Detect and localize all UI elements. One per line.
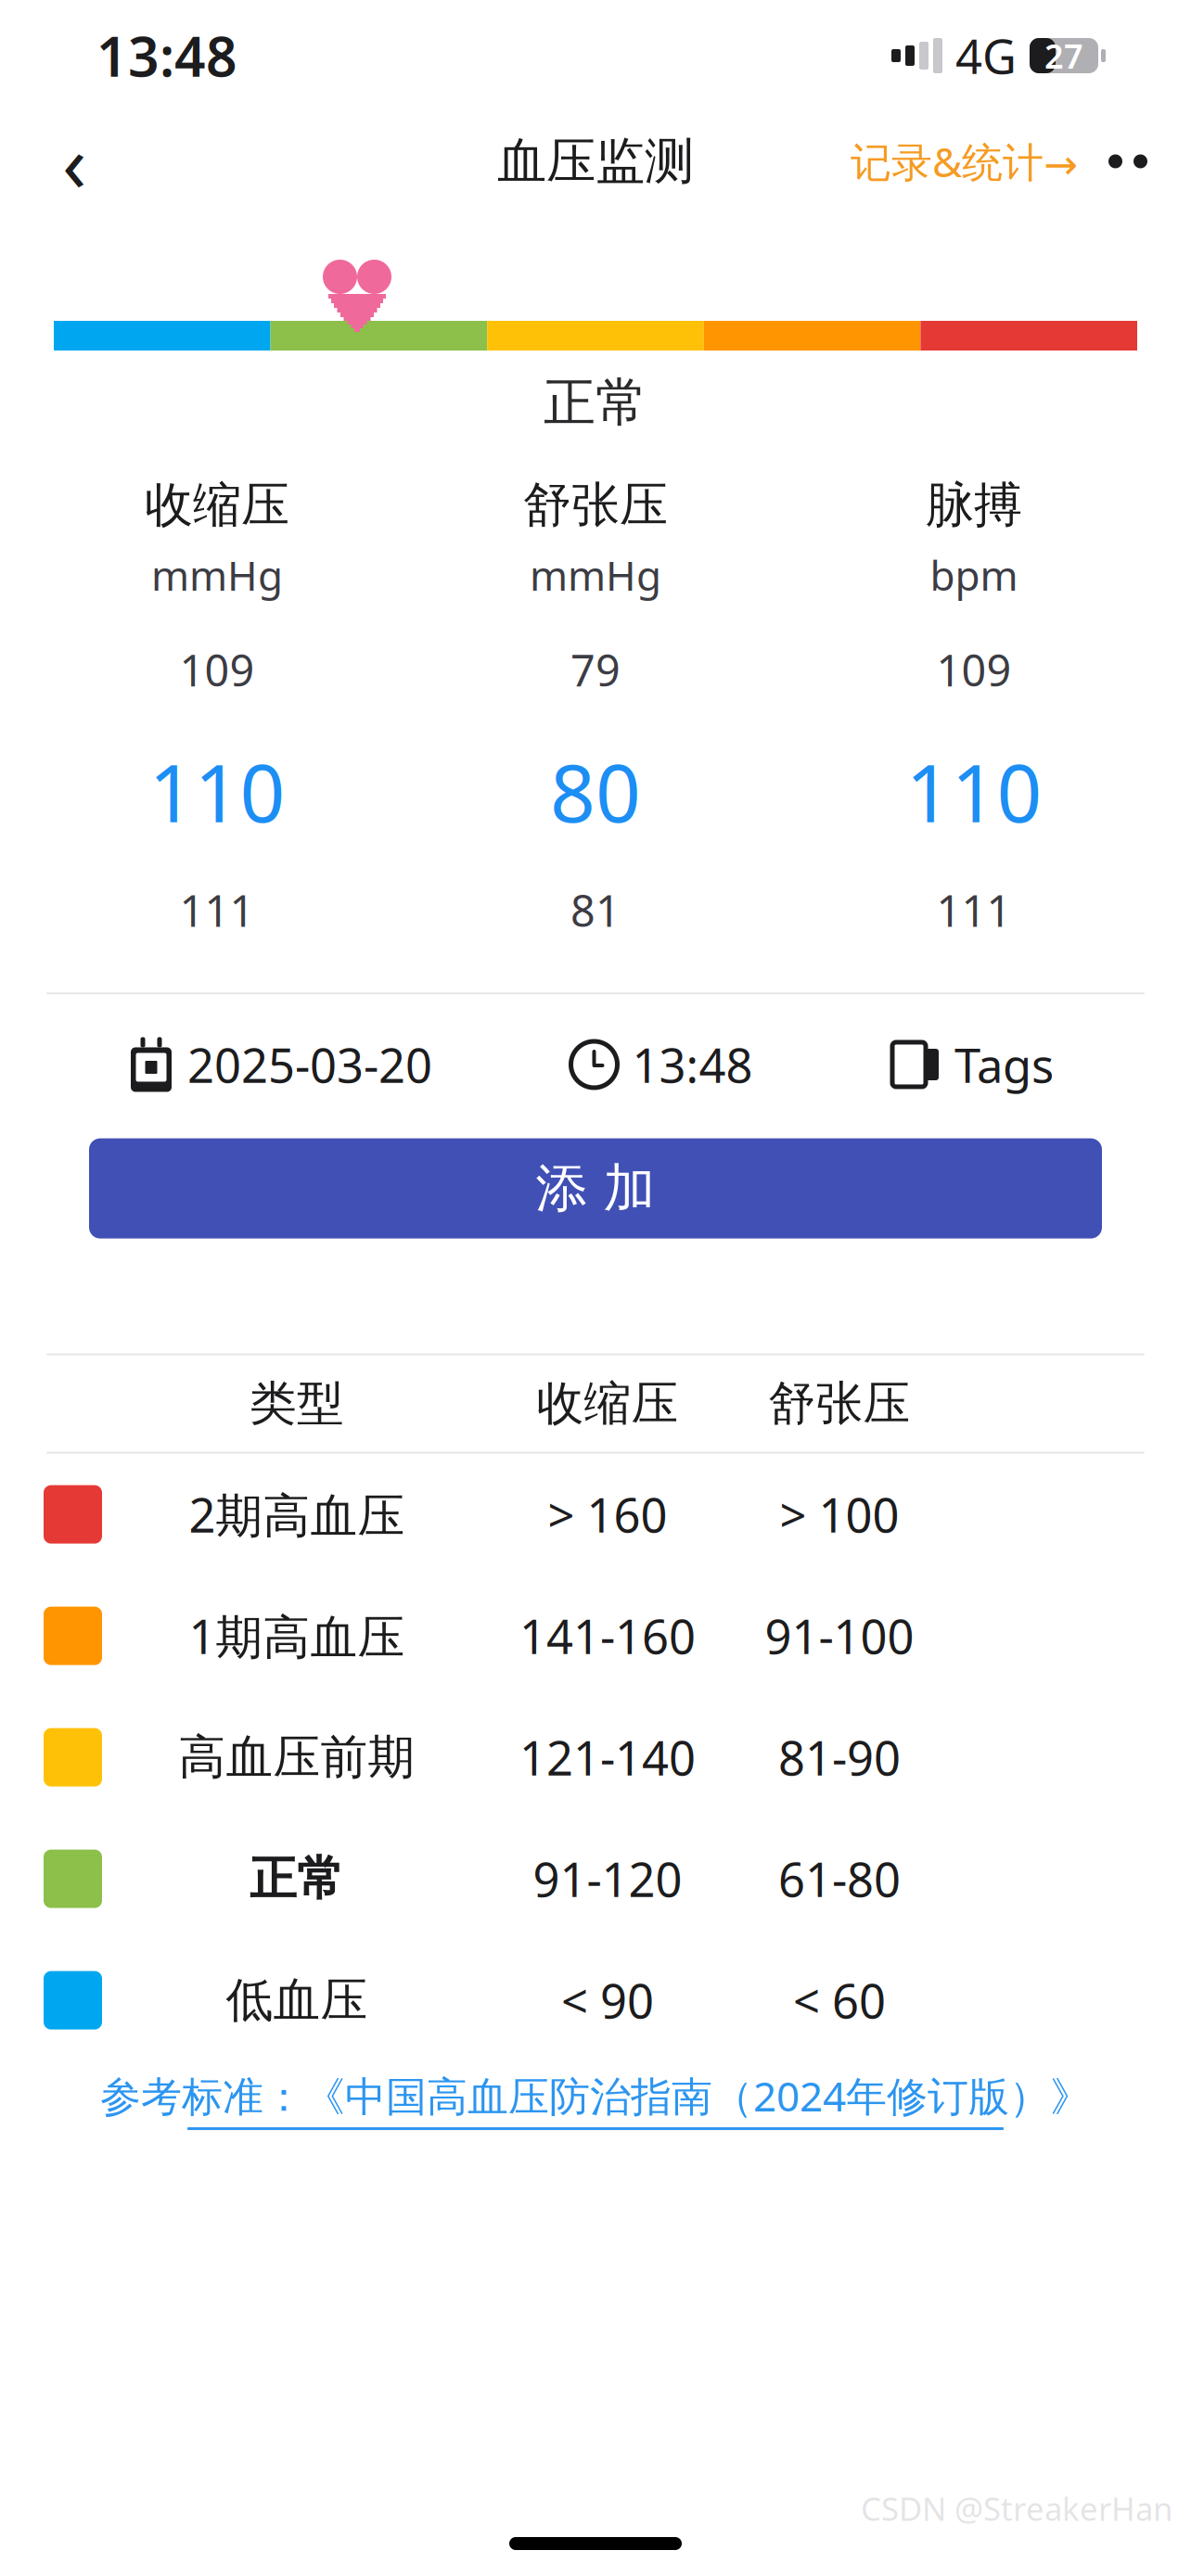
staticText: 参考标准：《中国高血压防治指南（2024年修订版）》 (100, 2068, 1091, 2123)
staticText: 1期高血压 (189, 1605, 405, 1667)
staticText: 2025-03-20 (187, 1033, 432, 1096)
staticText: ‹ (62, 109, 86, 214)
staticText: < 60 (793, 1969, 886, 2031)
staticText: > 100 (780, 1483, 899, 1546)
button[interactable]: More options (1087, 121, 1169, 202)
staticText: 111 (936, 881, 1012, 939)
staticText: 4G (955, 24, 1017, 87)
staticText: 121-140 (519, 1726, 696, 1789)
staticText: 收缩压 (145, 476, 289, 535)
button[interactable]: 添 加 (89, 1138, 1102, 1238)
staticText: 添 加 (536, 1157, 655, 1220)
staticText: 79 (570, 641, 621, 698)
staticText: Tags (954, 1033, 1054, 1096)
staticText: bpm (930, 548, 1018, 602)
staticText: 类型 (250, 1375, 344, 1432)
staticText: 81 (570, 881, 621, 939)
button[interactable]: Tags (891, 1022, 1054, 1107)
button[interactable]: 109 (28, 641, 406, 939)
staticText: 61-80 (778, 1848, 901, 1910)
staticText: mmHg (151, 548, 283, 602)
staticText: 正常 (544, 371, 647, 435)
staticText: 111 (179, 881, 255, 939)
staticText: 80 (550, 739, 641, 844)
staticText: 脉搏 (926, 476, 1022, 535)
staticText: CSDN @StreakerHan (861, 2487, 1172, 2530)
button[interactable]: 109 (785, 641, 1163, 939)
staticText: 高血压前期 (179, 1728, 415, 1786)
button[interactable]: Back (33, 121, 115, 202)
staticText: 13:48 (632, 1033, 753, 1096)
staticText: 舒张压 (523, 476, 668, 535)
staticText: 27 (1044, 33, 1083, 78)
staticText: 110 (149, 739, 285, 844)
staticText: 13:48 (96, 19, 237, 92)
staticText: > 160 (548, 1483, 667, 1546)
staticText: 舒张压 (768, 1375, 910, 1432)
staticText: 正常 (250, 1850, 344, 1908)
staticText: 81-90 (778, 1726, 901, 1789)
staticText: 109 (936, 641, 1012, 698)
staticText: 记录&统计→ (851, 134, 1078, 188)
staticText: 收缩压 (537, 1375, 679, 1432)
staticText: < 90 (561, 1969, 654, 2031)
staticText: mmHg (530, 548, 661, 602)
staticText: 109 (179, 641, 255, 698)
staticText: 血压监测 (497, 131, 694, 192)
button[interactable]: 79 (406, 641, 785, 939)
staticText: 91-100 (765, 1605, 914, 1667)
button[interactable]: 参考标准：《中国高血压防治指南（2024年修订版）》 (100, 2068, 1091, 2130)
staticText: 2期高血压 (189, 1483, 405, 1546)
staticText: 110 (906, 739, 1042, 844)
button[interactable]: 记录&统计→ (841, 121, 1087, 202)
staticText: 141-160 (519, 1605, 696, 1667)
button[interactable]: 13:48 (571, 1022, 753, 1107)
button[interactable]: 2025-03-20 (130, 1022, 432, 1107)
staticText: 低血压 (226, 1971, 368, 2029)
staticText: 91-120 (533, 1848, 682, 1910)
